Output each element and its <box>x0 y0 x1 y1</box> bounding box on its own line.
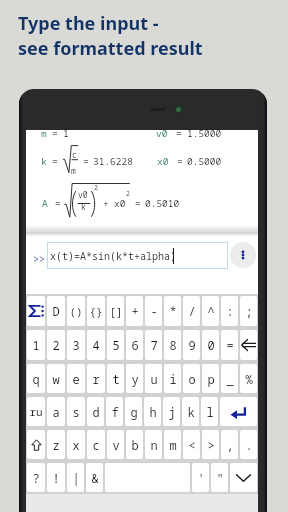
button[interactable]: ! <box>47 463 65 492</box>
button[interactable]: _ <box>221 364 238 393</box>
button[interactable]: Backspace <box>240 330 257 360</box>
button[interactable]: - <box>145 296 162 326</box>
staticText: 1 <box>63 127 69 140</box>
staticText: 8 <box>169 337 177 353</box>
staticText: 2 <box>52 337 60 353</box>
staticText: = <box>52 127 58 140</box>
button[interactable]: 9 <box>183 330 200 360</box>
button[interactable]: e <box>67 364 85 393</box>
button[interactable]: D <box>47 296 65 326</box>
staticText: _ <box>226 371 234 387</box>
button[interactable]: y <box>126 364 143 393</box>
button[interactable]: q <box>27 364 45 393</box>
button[interactable]: [] <box>107 296 124 326</box>
button[interactable]: 5 <box>107 330 124 360</box>
button[interactable]: a <box>47 397 65 426</box>
button[interactable]: < <box>183 430 200 459</box>
button[interactable]: x <box>67 430 85 459</box>
button[interactable]: p <box>202 364 219 393</box>
staticText: h <box>149 404 157 420</box>
button[interactable]: g <box>125 397 142 426</box>
button[interactable]: () <box>67 296 85 326</box>
button[interactable]: 7 <box>145 330 162 360</box>
button[interactable]: i <box>164 364 181 393</box>
button[interactable]: Enter <box>220 397 257 426</box>
button[interactable]: | <box>67 463 84 492</box>
button[interactable]: k <box>182 397 199 426</box>
button[interactable]: j <box>163 397 180 426</box>
button[interactable]: ' <box>192 463 209 492</box>
button[interactable]: " <box>211 463 228 492</box>
staticText: 5 <box>112 337 120 353</box>
button[interactable]: / <box>183 296 200 326</box>
staticText: z <box>52 437 60 453</box>
button[interactable]: 0 <box>202 330 219 360</box>
button[interactable]: ? <box>27 463 45 492</box>
button[interactable]: 1 <box>27 330 45 360</box>
button[interactable]: ^ <box>202 296 219 326</box>
button[interactable]: 6 <box>126 330 143 360</box>
button[interactable]: b <box>126 430 143 459</box>
button[interactable]: x(t)=A*sin(k*t+alpha) <box>47 242 228 269</box>
staticText: s <box>72 404 80 420</box>
button[interactable]: 3 <box>67 330 85 360</box>
staticText: = <box>177 155 183 168</box>
staticText: = <box>52 155 58 168</box>
staticText: see formatted result <box>18 36 203 61</box>
staticText: p <box>207 371 215 387</box>
button[interactable]: 4 <box>87 330 105 360</box>
button[interactable]: Sigma <box>27 296 45 326</box>
button[interactable]: & <box>86 463 103 492</box>
button[interactable]: c <box>87 430 105 459</box>
staticText: ! <box>52 470 60 486</box>
button[interactable]: u <box>145 364 162 393</box>
button[interactable]: f <box>106 397 123 426</box>
staticText: m <box>41 127 47 140</box>
button[interactable]: : <box>221 296 238 326</box>
staticText: 3 <box>72 337 80 353</box>
button[interactable]: l <box>201 397 218 426</box>
staticText: 1.5000 <box>187 127 222 140</box>
button[interactable]: d <box>87 397 104 426</box>
button[interactable]: More options <box>230 242 256 268</box>
button[interactable]: + <box>126 296 143 326</box>
button[interactable]: t <box>107 364 124 393</box>
staticText: = <box>135 197 141 210</box>
button[interactable]: o <box>183 364 200 393</box>
button[interactable]: z <box>47 430 65 459</box>
button[interactable]: ru <box>27 397 45 426</box>
staticText: . <box>245 437 253 453</box>
button[interactable]: {} <box>87 296 105 326</box>
button[interactable]: % <box>240 364 257 393</box>
staticText: k <box>41 155 47 168</box>
staticText: 31.6228 <box>93 155 133 168</box>
button[interactable]: ; <box>240 296 257 326</box>
staticText: e <box>72 371 80 387</box>
staticText: Type the input - <box>18 11 159 36</box>
staticText: 0.5010 <box>145 197 180 210</box>
button[interactable]: r <box>87 364 105 393</box>
button[interactable]: . <box>240 430 257 459</box>
button[interactable]: , <box>221 430 238 459</box>
button[interactable]: m <box>164 430 181 459</box>
staticText: " <box>216 470 224 486</box>
button[interactable]: Hide keyboard <box>230 463 257 492</box>
button[interactable]: Shift <box>27 430 45 459</box>
staticText: A <box>42 197 48 210</box>
button[interactable]: 2 <box>47 330 65 360</box>
staticText: d <box>92 404 100 420</box>
staticText: ru <box>29 404 43 419</box>
button[interactable]: > <box>202 430 219 459</box>
button[interactable]: h <box>144 397 161 426</box>
staticText: ; <box>245 303 253 319</box>
button[interactable]: s <box>67 397 85 426</box>
staticText: v <box>112 437 120 453</box>
button[interactable]: 8 <box>164 330 181 360</box>
button[interactable]: * <box>164 296 181 326</box>
button[interactable]: n <box>145 430 162 459</box>
staticText: < <box>188 437 196 453</box>
button[interactable]: = <box>221 330 238 360</box>
button[interactable]: w <box>47 364 65 393</box>
button[interactable]: v <box>107 430 124 459</box>
